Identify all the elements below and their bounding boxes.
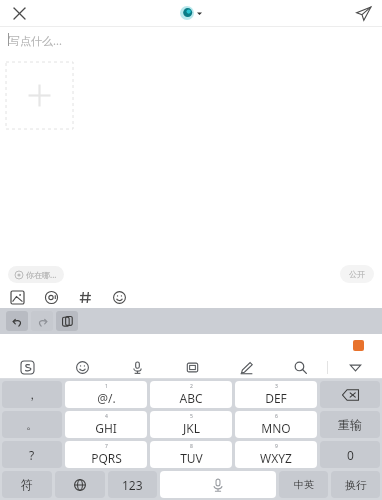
button[interactable]: Expression [165,356,219,378]
staticText: WXYZ [260,450,292,466]
button[interactable]: Redo [31,311,53,331]
button[interactable]: 5 [150,411,232,438]
staticText: 8 [190,443,193,450]
button[interactable]: Mention [42,288,60,306]
staticText: JKL [183,420,200,436]
staticText: 你在哪... [26,269,57,280]
button[interactable]: Clipboard [56,311,78,331]
staticText: 3 [275,383,278,390]
staticText: 符 [21,477,33,492]
button[interactable]: 。 [2,411,62,438]
button[interactable]: 重输 [320,411,380,438]
button[interactable]: Language [55,471,105,498]
button[interactable]: 2 [150,381,232,408]
staticText: 。 [26,417,38,432]
button[interactable]: 换行 [331,471,380,498]
staticText: 换行 [345,478,367,492]
button[interactable]: 4 [65,411,147,438]
button[interactable]: 9 [235,441,317,468]
button[interactable]: 中英 [279,471,328,498]
staticText: GHI [95,420,117,436]
button[interactable]: Send [350,0,376,26]
staticText: 2 [190,383,193,390]
button[interactable]: Emoji [110,288,128,306]
staticText: TUV [180,450,203,466]
button[interactable]: Handwriting [219,356,273,378]
button[interactable]: Delete [320,381,380,408]
button[interactable]: Close [6,0,32,26]
staticText: 9 [275,443,278,450]
button[interactable]: ， [2,381,62,408]
button[interactable]: 7 [65,441,147,468]
staticText: PQRS [91,450,122,466]
staticText: 1 [105,383,108,390]
staticText: ， [26,387,38,402]
button[interactable]: Visibility [340,265,374,283]
button[interactable]: 0 [320,441,380,468]
button[interactable]: Voice [110,356,165,378]
button[interactable]: Topic [76,288,94,306]
button[interactable]: 3 [235,381,317,408]
button[interactable]: Space [160,471,276,498]
staticText: 公开 [349,269,365,279]
staticText: 7 [105,443,108,450]
button[interactable]: 8 [150,441,232,468]
button[interactable]: 符 [2,471,52,498]
button[interactable]: Sticker [353,340,364,351]
button[interactable]: Search [273,356,327,378]
staticText: 123 [122,477,143,493]
button[interactable]: 你在哪... [8,266,64,283]
button[interactable]: Image [8,288,26,306]
button[interactable]: ？ [2,441,62,468]
staticText: 4 [105,413,108,420]
button[interactable] [180,6,202,20]
button[interactable]: Add image [6,62,73,129]
button[interactable]: 1 [65,381,147,408]
staticText: ABC [179,390,203,406]
staticText: 6 [275,413,278,420]
staticText: 5 [190,413,193,420]
button[interactable]: Undo [6,311,28,331]
staticText: 0 [347,447,354,463]
button[interactable]: 6 [235,411,317,438]
staticText: @/. [97,390,116,406]
staticText: ? [29,447,35,463]
staticText: 中英 [294,478,314,491]
button[interactable]: 123 [108,471,157,498]
staticText: 写点什么... [9,33,62,48]
staticText: MNO [261,420,291,436]
button[interactable]: Hide keyboard [328,356,382,378]
staticText: 重输 [338,417,362,432]
button[interactable]: Emoji [55,356,110,378]
staticText: DEF [265,390,287,406]
button[interactable]: Keyboard settings [0,356,55,378]
